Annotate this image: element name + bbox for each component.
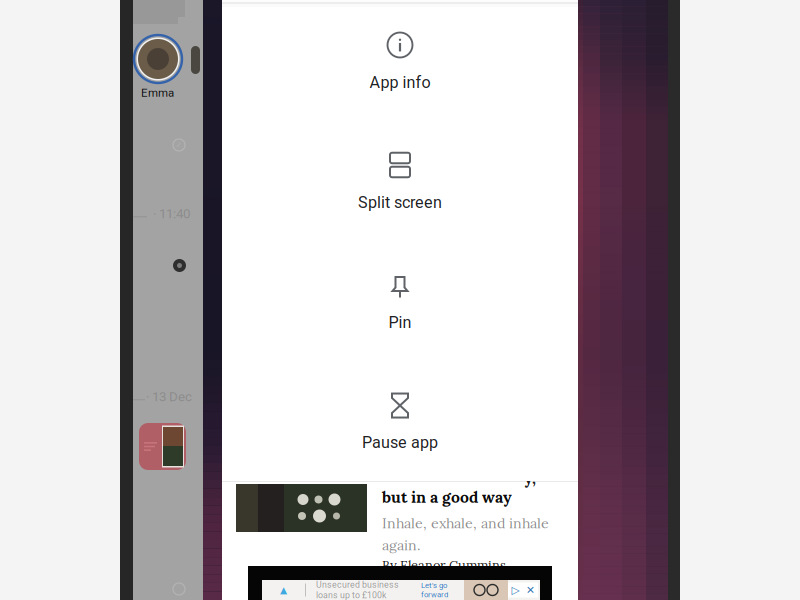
staticText: again. [382,536,420,554]
staticText: By Eleanor Cummins [382,557,506,573]
staticText: y, [524,468,536,488]
button[interactable]: App info [222,4,578,124]
staticText: ✕ [526,584,535,596]
staticText: Pin [388,313,411,332]
staticText: · 11:40 [153,206,190,222]
staticText: forward [421,590,448,599]
staticText: ▲ [280,585,287,595]
staticText: Split screen [358,193,442,212]
staticText: App info [369,73,430,92]
staticText: Unsecured business [316,580,399,590]
staticText: Pause app [362,433,438,452]
staticText: ▷ [511,584,519,596]
button[interactable]: Pause app [222,364,578,484]
staticText: Inhale, exhale, and inhale [382,514,549,532]
staticText: · 13 Dec [146,389,192,405]
staticText: loans up to £100k [316,590,386,600]
staticText: Emma [141,86,174,99]
staticText: Let's go [421,581,447,590]
staticText: but in a good way [382,487,512,507]
button[interactable]: Split screen [222,124,578,244]
button[interactable]: Pin [222,244,578,364]
